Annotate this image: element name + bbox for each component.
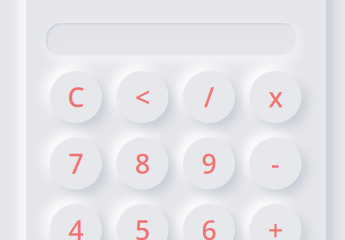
staticText: 9 [201,146,216,181]
button[interactable]: 7 [50,137,102,189]
staticText: 6 [201,212,216,240]
staticText: x [268,79,282,115]
button[interactable]: 4 [50,204,102,240]
staticText: < [135,79,150,115]
staticText: C [67,79,84,115]
button[interactable]: - [249,137,301,189]
button[interactable]: 6 [183,204,235,240]
button[interactable]: 8 [116,137,168,189]
staticText: / [204,79,214,115]
staticText: 7 [68,146,83,181]
button[interactable]: 9 [183,137,235,189]
staticText: - [271,146,280,181]
staticText: 8 [135,146,150,181]
button[interactable]: C [50,71,102,123]
button[interactable]: x [249,71,301,123]
staticText: + [268,212,283,240]
staticText: 4 [68,212,83,240]
button[interactable]: < [116,71,168,123]
button[interactable]: + [249,204,301,240]
staticText: 5 [135,212,150,240]
button[interactable]: / [183,71,235,123]
button[interactable]: 5 [116,204,168,240]
